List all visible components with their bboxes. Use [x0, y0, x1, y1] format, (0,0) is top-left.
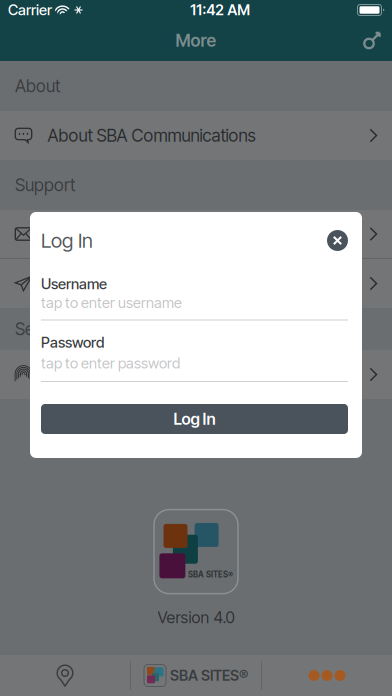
staticText: More [175, 30, 216, 51]
staticText: tap to enter username [41, 294, 182, 311]
button[interactable]: Contact Us [0, 210, 392, 259]
button[interactable]: Close [327, 230, 348, 251]
staticText: About [15, 75, 60, 96]
button[interactable]: Sites [0, 655, 130, 696]
button[interactable]: Log In [41, 404, 348, 434]
staticText: Username [41, 275, 107, 293]
button[interactable]: More [262, 655, 392, 696]
staticText: Contact Us [47, 223, 130, 244]
staticText: Password [41, 333, 104, 351]
staticText: Log In [173, 409, 215, 429]
button[interactable]: Send Feedback [0, 259, 392, 308]
staticText: Security [15, 318, 75, 339]
staticText: Log In [41, 228, 93, 253]
staticText: 11:42 AM [190, 1, 250, 19]
staticText: Version 4.0 [157, 608, 234, 627]
staticText: Support [15, 174, 75, 195]
button[interactable]: Log in [351, 25, 392, 55]
staticText: SBA SITES® [170, 667, 248, 684]
button[interactable]: About SBA Communications [0, 111, 392, 160]
staticText: SBA SITES® [188, 570, 233, 579]
button[interactable]: Touch ID [0, 350, 392, 399]
button[interactable]: SBA SITES® [131, 655, 261, 696]
staticText: About SBA Communications [47, 125, 255, 146]
staticText: Touch ID [47, 364, 113, 385]
staticText: Send Feedback [47, 273, 163, 294]
staticText: tap to enter password [41, 354, 180, 372]
staticText: Carrier [8, 1, 52, 19]
